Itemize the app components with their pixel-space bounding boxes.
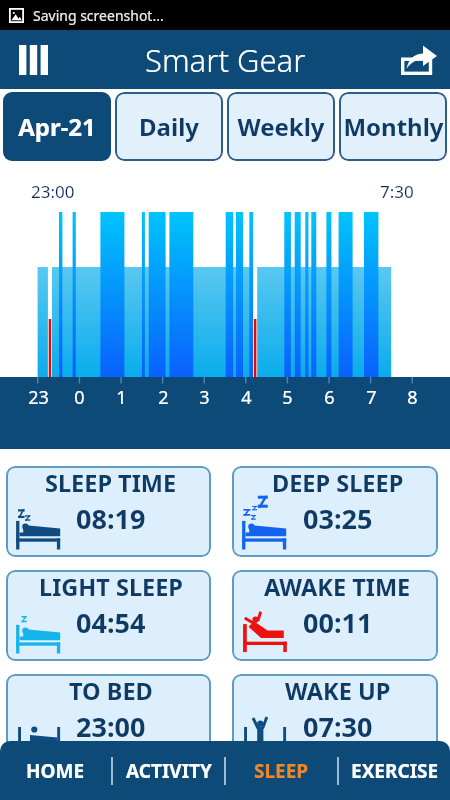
staticText: 0 [74,385,85,410]
staticText: 23:00 [31,180,75,203]
button[interactable]: Monthly [339,92,447,161]
button[interactable]: ACTIVITY [113,741,224,800]
staticText: 7 [366,385,377,410]
staticText: Daily [139,110,199,143]
button[interactable]: DEEP SLEEP [232,466,438,557]
button[interactable]: Weekly [227,92,335,161]
button[interactable]: LIGHT SLEEP [6,570,211,661]
staticText: Apr-21 [18,110,96,143]
button[interactable]: Daily [115,92,223,161]
staticText: AWAKE TIME [264,571,411,603]
button[interactable]: EXERCISE [339,741,450,800]
staticText: SLEEP TIME [45,467,177,499]
staticText: 4 [241,385,252,410]
button[interactable]: HOME [0,741,111,800]
staticText: 23 [28,385,49,410]
staticText: TO BED [69,675,153,707]
staticText: HOME [26,758,85,784]
staticText: SLEEP [254,758,309,784]
staticText: 6 [324,385,335,410]
staticText: WAKE UP [285,675,391,707]
staticText: Smart Gear [145,39,306,81]
staticText: Monthly [343,110,444,143]
staticText: 04:54 [76,604,146,641]
staticText: 03:25 [303,500,373,537]
button[interactable]: AWAKE TIME [232,570,438,661]
staticText: LIGHT SLEEP [39,571,183,603]
staticText: 00:11 [303,604,373,641]
button[interactable]: Apr-21 [3,92,111,161]
staticText: 3 [199,385,210,410]
button[interactable]: TO BED [6,674,211,765]
button[interactable]: SLEEP [226,741,337,800]
button[interactable]: Share [388,30,450,89]
button[interactable]: WAKE UP [232,674,438,765]
staticText: 23:00 [76,708,146,745]
staticText: 1 [116,385,127,410]
staticText: Weekly [237,110,325,143]
staticText: EXERCISE [351,758,439,784]
staticText: 5 [282,385,293,410]
staticText: 7:30 [380,180,414,203]
button[interactable]: SLEEP TIME [6,466,211,557]
staticText: 2 [158,385,169,410]
staticText: Saving screenshot... [33,6,164,25]
staticText: 07:30 [303,708,373,745]
staticText: 8 [407,385,418,410]
staticText: 08:19 [76,500,146,537]
staticText: ACTIVITY [126,758,212,784]
staticText: DEEP SLEEP [272,467,404,499]
button[interactable]: Menu [0,30,66,89]
